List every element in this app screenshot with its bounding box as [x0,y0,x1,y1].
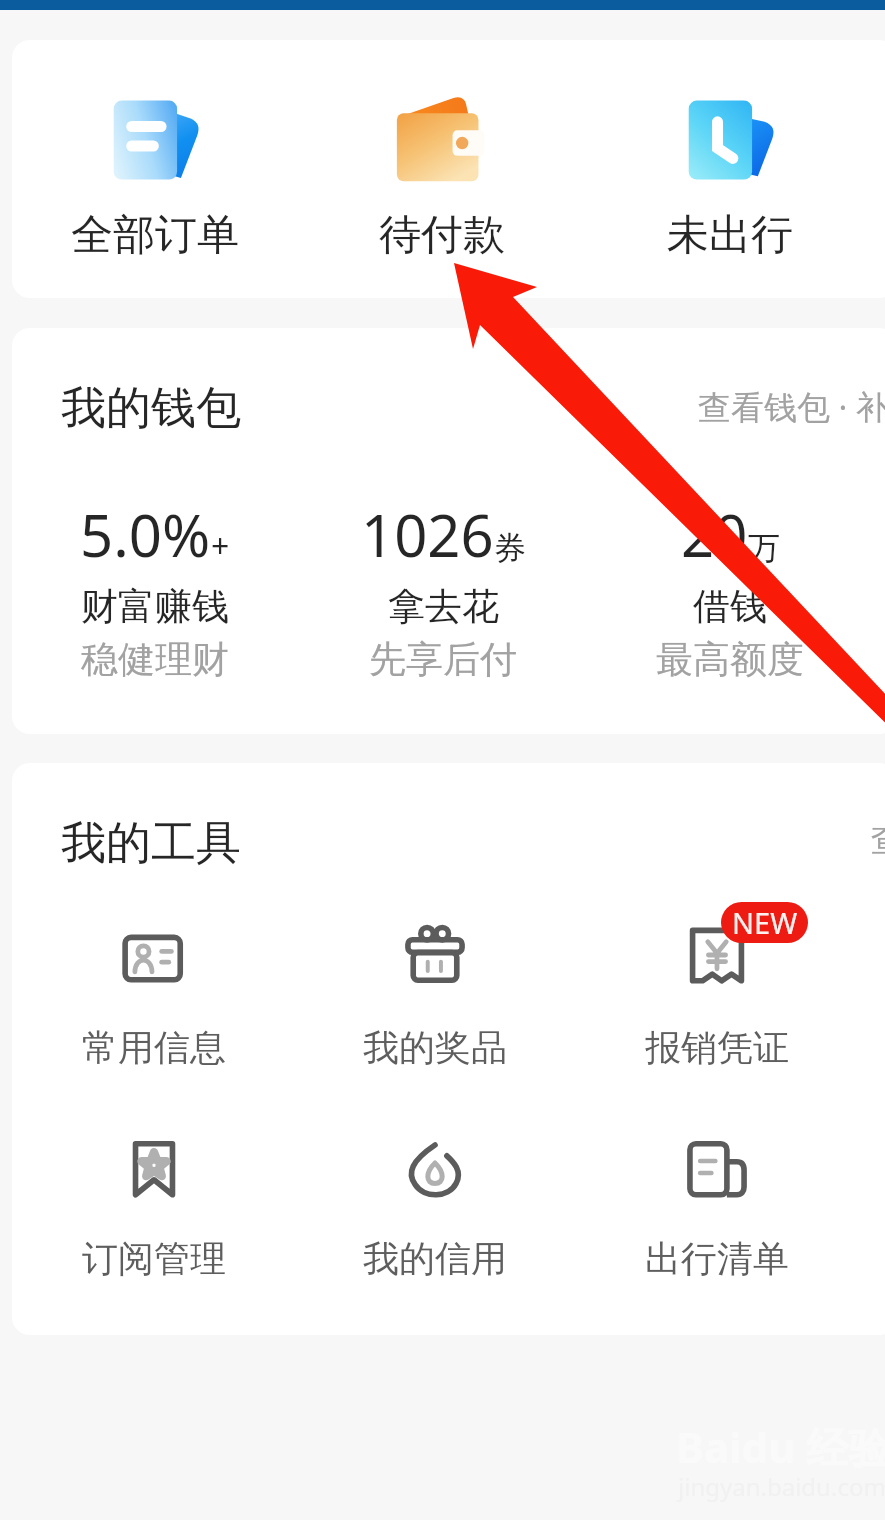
button[interactable]: 全部订单 [15,40,295,298]
button[interactable]: 1026 [303,490,583,690]
staticText: 万 [748,528,780,568]
staticText: 20 [681,495,748,574]
staticText: 我的奖品 [363,1025,507,1070]
staticText: 先享后付 [369,636,517,683]
button[interactable]: 我的工具 [61,815,241,872]
button[interactable]: 待付款 [302,40,582,298]
staticText: 常用信息 [82,1025,226,1070]
staticText: 最高额度 [656,636,804,683]
staticText: 财富赚钱 [81,583,229,630]
staticText: 我的信用 [363,1236,507,1281]
staticText: NEW [732,903,798,942]
button[interactable]: 未出行 [590,40,870,298]
staticText: 我的钱包 [61,380,241,437]
staticText: 全部订单 [71,209,239,262]
button[interactable]: 20 [590,490,870,690]
button[interactable]: 我的奖品 [300,898,570,1068]
staticText: 未出行 [667,209,793,262]
button[interactable]: 我的钱包 [61,380,241,437]
button[interactable]: 查看全部工具 [871,819,885,861]
button[interactable]: 订阅管理 [19,1112,289,1282]
staticText: 5.0% [80,495,211,574]
staticText: 报销凭证 [645,1025,789,1070]
staticText: 待付款 [379,209,505,262]
button[interactable]: NEW [582,898,852,1068]
staticText: 稳健理财 [81,636,229,683]
button[interactable]: 查看钱包 · 补 [698,384,885,429]
staticText: 出行清单 [645,1236,789,1281]
staticText: 1026 [361,495,494,574]
staticText: 我的工具 [61,815,241,872]
staticText: 订阅管理 [82,1236,226,1281]
staticText: 查看钱包 · 补 [698,384,885,429]
staticText: 拿去花 [388,583,499,630]
staticText: 券 [494,528,526,568]
button[interactable]: 5.0% [15,490,295,690]
button[interactable]: 我的信用 [300,1112,570,1282]
button[interactable]: 出行清单 [582,1112,852,1282]
staticText: + [211,524,230,568]
staticText: 查 [871,819,885,861]
button[interactable]: 常用信息 [19,898,289,1068]
staticText: 借钱 [693,583,767,630]
